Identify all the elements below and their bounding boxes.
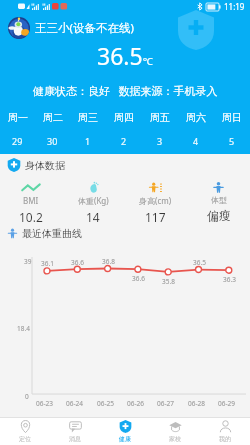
staticText: 06-29: [218, 399, 235, 408]
staticText: 36.5: [193, 258, 206, 267]
staticText: 18.4: [17, 324, 30, 333]
staticText: 36.1: [41, 259, 54, 268]
staticText: 35.8: [162, 277, 175, 286]
button[interactable]: 周二: [35, 111, 70, 147]
staticText: 36.6: [132, 274, 145, 283]
staticText: BMI: [23, 195, 39, 206]
staticText: 体型: [211, 195, 227, 205]
staticText: 周一: [8, 111, 28, 124]
button[interactable]: 周六: [178, 111, 214, 147]
button[interactable]: 消息: [50, 418, 100, 445]
staticText: 30: [47, 135, 58, 147]
staticText: 3: [157, 135, 163, 147]
staticText: 1: [85, 135, 91, 147]
staticText: 06-27: [157, 399, 174, 408]
staticText: 周三: [78, 111, 98, 124]
button[interactable]: 体重(Kg): [62, 181, 124, 225]
button[interactable]: 健康: [100, 418, 150, 445]
staticText: 健康: [119, 435, 131, 443]
other: Profile avatar: [8, 17, 30, 39]
staticText: 36.6: [71, 258, 84, 267]
staticText: ℃: [143, 54, 153, 68]
staticText: 最近体重曲线: [22, 227, 82, 240]
staticText: 06-25: [97, 399, 114, 408]
staticText: 我的: [219, 435, 231, 443]
staticText: 36.5: [97, 40, 143, 71]
button[interactable]: BMI: [0, 181, 62, 225]
staticText: 周五: [150, 111, 170, 124]
staticText: 14: [86, 209, 100, 225]
staticText: 10.2: [19, 209, 43, 225]
button[interactable]: 周一: [0, 111, 35, 147]
staticText: 身高(cm): [139, 195, 172, 206]
button[interactable]: 定位: [0, 418, 50, 445]
staticText: 11:19: [224, 1, 245, 12]
staticText: 29: [12, 135, 23, 147]
staticText: 体重(Kg): [78, 195, 109, 206]
staticText: 周六: [186, 111, 206, 124]
staticText: 117: [145, 209, 166, 225]
staticText: 消息: [69, 435, 81, 443]
staticText: 06-28: [188, 399, 205, 408]
button[interactable]: 周日: [214, 111, 250, 147]
button[interactable]: 周三: [70, 111, 106, 147]
staticText: 5: [229, 135, 235, 147]
staticText: 4: [193, 135, 199, 147]
staticText: 定位: [19, 435, 31, 443]
staticText: 家校: [169, 435, 181, 443]
button[interactable]: 体型: [187, 181, 250, 223]
staticText: 身体数据: [25, 159, 65, 172]
staticText: 0: [25, 392, 29, 401]
staticText: 周四: [114, 111, 134, 124]
staticText: 06-26: [127, 399, 144, 408]
button[interactable]: 身高(cm): [124, 181, 187, 225]
button[interactable]: 周五: [142, 111, 178, 147]
staticText: 39: [24, 257, 32, 266]
staticText: 健康状态：良好 数据来源：手机录入: [33, 83, 218, 98]
button[interactable]: 我的: [200, 418, 250, 445]
staticText: 06-24: [66, 399, 83, 408]
button[interactable]: Profile avatar: [8, 17, 134, 39]
staticText: 06-23: [36, 399, 53, 408]
button[interactable]: 周四: [106, 111, 142, 147]
staticText: 王三小(设备不在线): [35, 20, 134, 36]
staticText: 2: [121, 135, 127, 147]
staticText: 周二: [43, 111, 63, 124]
staticText: 36.3: [223, 275, 236, 284]
staticText: 周日: [222, 111, 242, 124]
staticText: 36.8: [102, 257, 115, 266]
staticText: 偏瘦: [207, 208, 231, 223]
button[interactable]: 家校: [150, 418, 200, 445]
